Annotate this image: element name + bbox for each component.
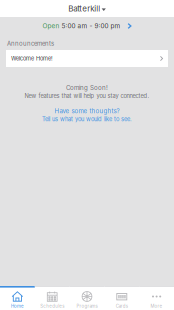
button[interactable]: Welcome Home! — [6, 50, 168, 67]
button[interactable]: Cards — [104, 286, 139, 310]
button[interactable]: Batterkill location picker — [0, 0, 174, 17]
staticText: Cards — [116, 303, 128, 309]
staticText: Open — [42, 22, 59, 30]
staticText: Have some thoughts? — [54, 107, 119, 115]
button[interactable]: Schedules — [35, 286, 70, 310]
staticText: Welcome Home! — [11, 55, 53, 62]
staticText: New features that will help you stay con… — [24, 92, 149, 99]
button[interactable]: Home — [0, 286, 35, 310]
staticText: Tell us what you would like to see. — [42, 116, 132, 123]
staticText: More — [151, 303, 163, 309]
staticText: Batterkill — [68, 4, 100, 13]
staticText: Coming Soon! — [66, 84, 108, 91]
staticText: 5:00 am - 9:00 pm — [61, 22, 120, 30]
button[interactable]: More — [139, 286, 174, 310]
button[interactable]: Open — [0, 17, 174, 35]
button[interactable]: Have some thoughts? — [0, 107, 174, 123]
staticText: Announcements — [7, 40, 54, 47]
staticText: Home — [11, 303, 24, 309]
button[interactable]: Programs — [70, 286, 104, 310]
staticText: Schedules — [40, 303, 64, 309]
staticText: Programs — [76, 303, 97, 309]
